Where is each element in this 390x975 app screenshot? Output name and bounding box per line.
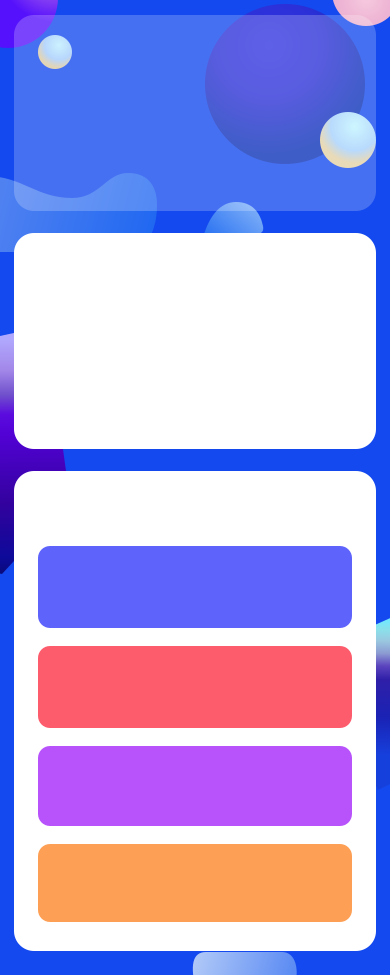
- button[interactable]: [38, 746, 352, 826]
- button[interactable]: [38, 546, 352, 628]
- button[interactable]: [38, 646, 352, 728]
- button[interactable]: [38, 844, 352, 922]
